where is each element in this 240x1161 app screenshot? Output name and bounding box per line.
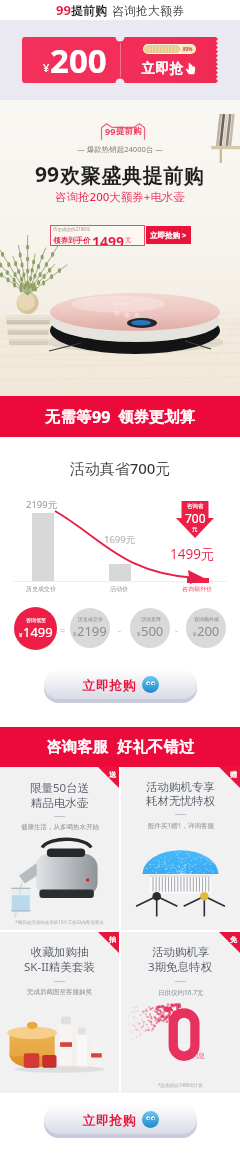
staticText: 200 xyxy=(50,38,107,83)
staticText: 抽 xyxy=(109,935,116,944)
button[interactable]: 活动购机专享 xyxy=(121,767,240,930)
staticText: 利息 xyxy=(191,1051,205,1060)
staticText: 活动价 xyxy=(110,585,128,593)
button[interactable]: 限量50台送 xyxy=(0,767,119,930)
staticText: 元 xyxy=(192,526,198,533)
staticText: 咨询客服 xyxy=(46,738,108,757)
staticText: 提前购 xyxy=(71,3,107,18)
other: 客服 xyxy=(142,676,159,693)
staticText: 咨询额外价 xyxy=(182,585,212,593)
staticText: 无需等 xyxy=(45,408,92,427)
staticText: 200 xyxy=(197,622,220,640)
staticText: 2199元 xyxy=(26,498,58,511)
staticText: 历史成交价 xyxy=(26,585,56,593)
staticText: 立即抢购 xyxy=(82,1112,136,1128)
staticText: 1699元 xyxy=(104,533,136,546)
staticText: 3期免息特权 xyxy=(148,959,213,975)
staticText: 咨询低至 xyxy=(26,617,46,623)
staticText: ¥ xyxy=(73,630,77,638)
staticText: 活动购机专享 xyxy=(146,780,215,794)
staticText: *赠品在活动结束后的15个工作日内寄送寄出 xyxy=(0,919,119,925)
staticText: ¥ xyxy=(43,60,50,75)
other: 客服 xyxy=(142,1111,159,1128)
staticText: 2199 xyxy=(77,622,107,640)
staticText: 配件买1赠1，详询客服 xyxy=(148,821,214,830)
staticText: 健康生活，从多喝热水开始 xyxy=(21,823,99,831)
button[interactable]: 立即抢购 xyxy=(44,1105,197,1134)
staticText: 99 xyxy=(92,406,111,428)
staticText: 收藏加购抽 xyxy=(31,945,89,959)
staticText: 送 xyxy=(109,770,116,779)
staticText: 历史成交价 xyxy=(78,616,103,622)
button[interactable]: 立即抢购 xyxy=(44,670,197,699)
staticText: 99 xyxy=(105,125,116,137)
staticText: 领券更划算 xyxy=(118,408,196,427)
staticText: 1499元 xyxy=(170,545,215,563)
staticText: 1499 xyxy=(23,623,53,641)
staticText: 精品电水壶 xyxy=(31,796,89,810)
staticText: 咨询省 xyxy=(187,503,204,510)
other: 立即抢 xyxy=(183,61,198,76)
staticText: 500 xyxy=(141,622,164,640)
staticText: — 爆款热销超24000台 — xyxy=(0,144,240,154)
staticText: 99 xyxy=(35,160,60,189)
staticText: 欢聚盛典提前购 xyxy=(60,164,205,189)
staticText: ¥ xyxy=(137,630,141,638)
staticText: 日供仅约16.7元 xyxy=(158,988,204,997)
staticText: 700 xyxy=(185,510,206,526)
staticText: 限量50台送 xyxy=(30,780,90,796)
button[interactable]: ¥ xyxy=(22,37,218,83)
staticText: 活动直降 xyxy=(141,616,161,622)
staticText: 好礼不错过 xyxy=(117,738,195,757)
staticText: ¥ xyxy=(19,631,23,639)
staticText: SK-II精美套装 xyxy=(24,959,95,975)
staticText: 耗材无忧特权 xyxy=(146,794,215,808)
staticText: 赠 xyxy=(230,770,237,779)
staticText: 完成后截图至客服抽奖 xyxy=(27,988,92,996)
staticText: - xyxy=(175,624,178,636)
staticText: 99 xyxy=(56,1,71,19)
staticText: 咨询抢大额券 xyxy=(112,3,184,18)
staticText: 立即抢购 > xyxy=(150,230,187,240)
staticText: = xyxy=(60,624,66,636)
staticText: 元 xyxy=(125,236,132,244)
button[interactable]: 活动购机享 xyxy=(121,932,240,1093)
staticText: 咨询抢200大额券+电水壶 xyxy=(0,189,240,205)
staticText: 历史成交价2199元 xyxy=(53,226,91,232)
staticText: 免 xyxy=(230,935,237,944)
staticText: 活动真省700元 xyxy=(0,458,240,478)
staticText: - xyxy=(118,624,121,636)
staticText: 80% xyxy=(183,46,193,52)
staticText: 活动购机享 xyxy=(152,945,210,959)
staticText: 立即抢 xyxy=(141,60,183,77)
staticText: 1499 xyxy=(92,232,125,246)
button[interactable]: 立即抢购 > xyxy=(146,226,191,244)
staticText: 咨询额外减 xyxy=(194,616,219,622)
staticText: 提前购 xyxy=(116,126,142,137)
button[interactable]: 收藏加购抽 xyxy=(0,932,119,1093)
staticText: 立即抢购 xyxy=(82,677,136,693)
staticText: ¥ xyxy=(193,630,197,638)
staticText: 领券到手价 xyxy=(53,236,91,245)
staticText: *总表价以1499元计算 xyxy=(121,1082,240,1088)
